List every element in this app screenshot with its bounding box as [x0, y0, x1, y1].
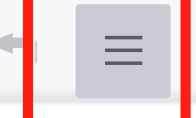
button[interactable]: Menu: [76, 4, 171, 98]
button[interactable]: Back: [0, 0, 24, 118]
